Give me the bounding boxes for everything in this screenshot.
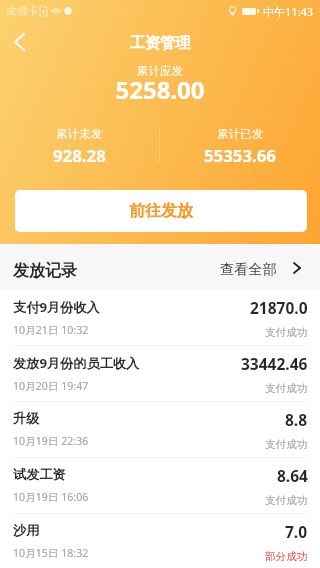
button[interactable]: 支付9月份收入 [0,290,320,345]
button[interactable]: 前往发放 [15,190,307,232]
staticText: 升级 [13,410,40,427]
staticText: 累计未发 [56,127,103,142]
staticText: 支付成功 [265,494,308,507]
staticText: 发放9月份的员工收入 [13,354,140,372]
staticText: 支付9月份收入 [13,298,100,316]
staticText: 查看全部 [220,260,277,278]
staticText: 10月21日 10:32 [13,323,89,337]
staticText: 工资管理 [0,33,320,52]
staticText: 10月19日 22:36 [13,434,89,448]
staticText: 中午11:43 [263,4,314,19]
staticText: 10月19日 16:06 [13,490,89,504]
staticText: 累计已发 [217,127,264,142]
button[interactable]: 试发工资 [0,458,320,513]
button[interactable]: 升级 [0,402,320,457]
staticText: 支付成功 [265,382,308,395]
staticText: 928.28 [53,144,106,163]
staticText: 7.0 [285,521,308,542]
staticText: 未插卡 [6,4,39,18]
staticText: 支付成功 [265,326,308,339]
staticText: 支付成功 [265,438,308,451]
button[interactable]: Back [4,26,36,58]
staticText: 10月20日 19:47 [13,379,89,393]
staticText: 55353.66 [204,144,276,163]
staticText: 21870.0 [250,297,308,318]
staticText: 沙用 [13,522,40,539]
staticText: 发放记录 [13,261,77,281]
staticText: 10月15日 18:32 [13,546,89,560]
staticText: 8.64 [277,465,308,486]
button[interactable]: 发放9月份的员工收入 [0,346,320,401]
staticText: 试发工资 [13,466,66,483]
staticText: 前往发放 [129,201,193,221]
staticText: 5258.00 [0,73,320,106]
staticText: 部分成功 [265,550,308,563]
button[interactable]: 查看全部 [208,260,319,278]
staticText: 8.8 [285,409,308,430]
staticText: 33442.46 [241,353,308,374]
staticText: 累计应发 [0,64,320,79]
button[interactable]: 沙用 [0,514,320,568]
